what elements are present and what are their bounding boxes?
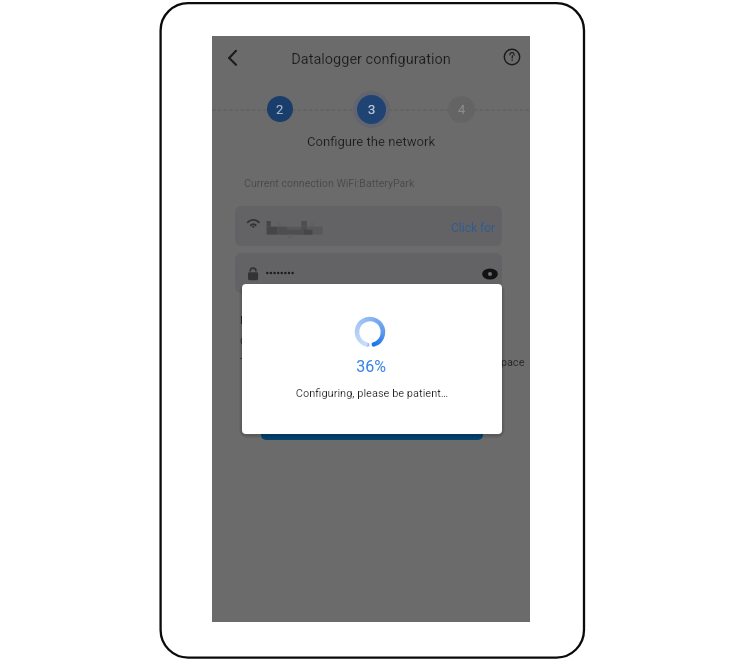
staticText: Datalogger configuration (212, 51, 530, 68)
staticText: Note: (240, 314, 267, 327)
staticText: Only 2.4GHz WiFi networks are supported (240, 335, 443, 348)
staticText: Current connection WiFi:BatteryPark (244, 177, 415, 189)
button[interactable]: Click for (451, 221, 496, 235)
button[interactable]: 2 (267, 96, 293, 122)
button[interactable]: Show password (478, 262, 502, 286)
button[interactable]: Click for (235, 206, 502, 246)
button[interactable]: Show password (235, 253, 502, 293)
button[interactable]: 4 (448, 96, 475, 123)
staticText: 2 (276, 102, 284, 117)
staticText: 4 (458, 102, 466, 117)
button[interactable]: Back (219, 47, 241, 69)
staticText: The password can not contain special cha… (240, 356, 525, 369)
staticText: Configuring, please be patient… (242, 387, 502, 400)
button[interactable]: 3 (357, 95, 386, 124)
staticText: Click for (451, 221, 496, 235)
button[interactable]: Help (500, 45, 524, 69)
staticText: Configure the network (212, 134, 530, 149)
staticText: 36% (242, 357, 501, 376)
button[interactable]: Next (261, 405, 483, 440)
staticText: 3 (368, 102, 376, 117)
